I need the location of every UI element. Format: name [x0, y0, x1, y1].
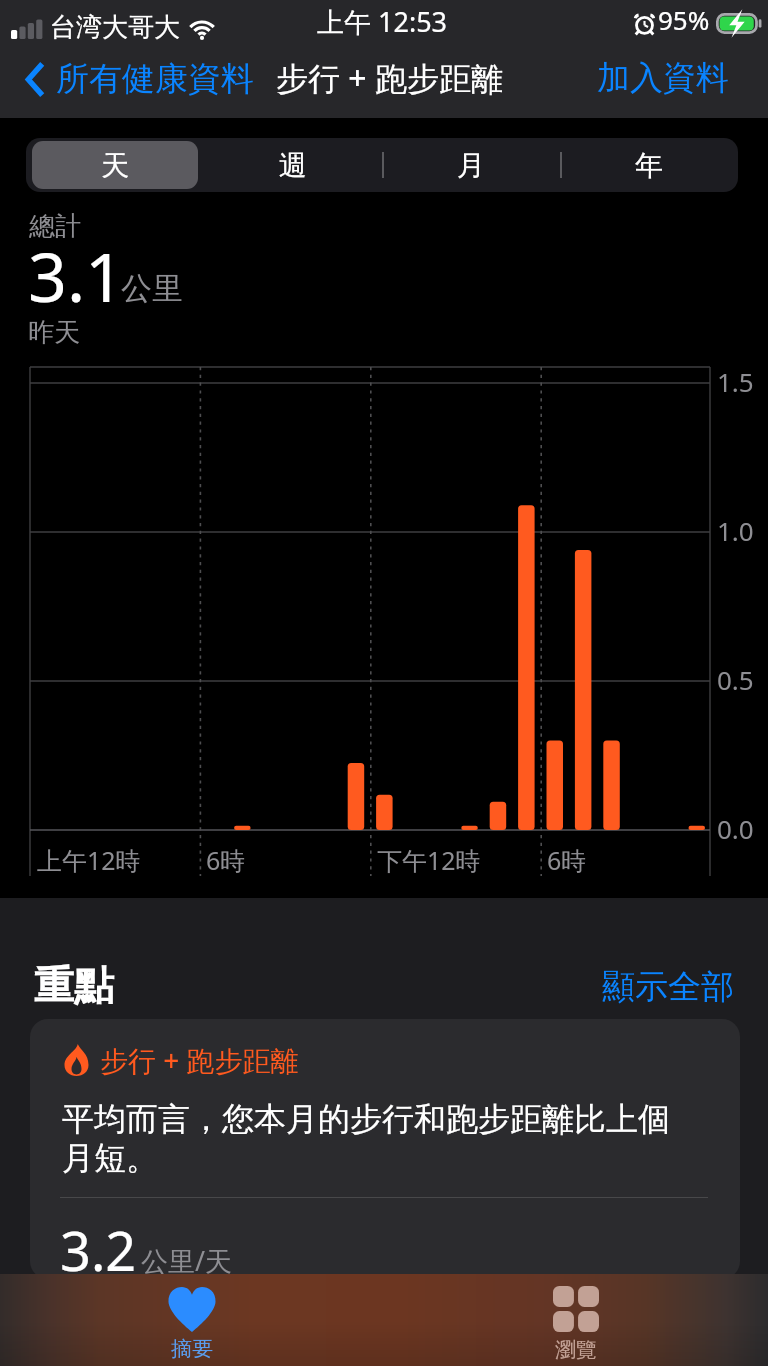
staticText: 3.2	[60, 1213, 137, 1279]
staticText: 天	[101, 148, 129, 183]
staticText: 週	[279, 148, 307, 183]
staticText: 所有健康資料	[56, 58, 254, 100]
staticText: 平均而言，您本月的步行和跑步距離比上個 月短。	[62, 1099, 670, 1179]
staticText: 1.0	[717, 513, 754, 548]
staticText: 總計	[29, 210, 81, 243]
button[interactable]: 瀏覽	[384, 1274, 768, 1366]
staticText: 上午 12:53	[317, 3, 448, 40]
button[interactable]: 所有健康資料	[25, 43, 254, 115]
button[interactable]: 加入資料	[597, 57, 729, 99]
staticText: 公里	[121, 269, 183, 308]
staticText: 月	[457, 148, 485, 183]
button[interactable]: 年	[560, 138, 738, 192]
staticText: 步行 + 跑步距離	[276, 56, 503, 100]
staticText: 公里/天	[141, 1242, 233, 1279]
button[interactable]: 顯示全部	[602, 966, 734, 1008]
staticText: 0.5	[717, 662, 754, 697]
staticText: 1.5	[717, 364, 754, 399]
staticText: 顯示全部	[602, 966, 734, 1008]
button[interactable]: 摘要	[0, 1274, 384, 1366]
button[interactable]: 步行 + 跑步距離	[30, 1019, 740, 1279]
staticText: 台湾大哥大	[50, 11, 180, 44]
staticText: 瀏覽	[555, 1337, 597, 1363]
staticText: 下午12時	[377, 843, 481, 877]
staticText: 加入資料	[597, 57, 729, 99]
staticText: 0.0	[717, 811, 754, 846]
staticText: 重點	[34, 960, 114, 1010]
button[interactable]: 月	[382, 138, 560, 192]
staticText: 6時	[206, 843, 246, 877]
staticText: 年	[635, 148, 663, 183]
button[interactable]: 天	[26, 138, 204, 192]
staticText: 步行 + 跑步距離	[100, 1041, 299, 1079]
staticText: 95%	[658, 2, 710, 37]
staticText: 3.1	[28, 229, 125, 322]
staticText: 6時	[547, 843, 587, 877]
button[interactable]: 週	[204, 138, 382, 192]
staticText: 上午12時	[37, 843, 141, 877]
staticText: 摘要	[171, 1336, 213, 1362]
staticText: 昨天	[28, 316, 80, 349]
